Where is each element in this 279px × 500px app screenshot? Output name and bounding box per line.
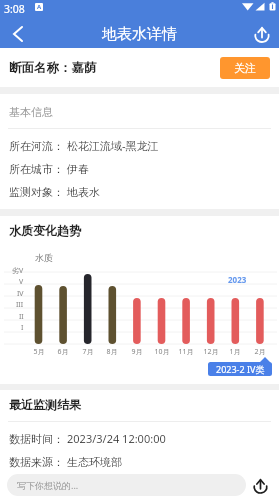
staticText: A [37,3,42,11]
staticText: 8月 [103,347,121,357]
staticText: 最近监测结果 [9,397,81,412]
staticText: 伊春 [67,162,89,176]
button[interactable]: Share [248,20,276,48]
staticText: 水质变化趋势 [9,223,81,238]
staticText: 所在城市： [9,162,64,176]
button[interactable]: Share [251,476,269,494]
staticText: 2023 [228,274,247,285]
staticText: 监测对象： [9,185,64,199]
staticText: 生态环境部 [67,455,122,469]
staticText: 6月 [54,347,72,357]
staticText: 断面名称：嘉荫 [9,60,97,76]
staticText: 地表水详情 [102,25,177,44]
staticText: 5月 [30,347,48,357]
button[interactable]: 写下你想说的... [7,474,246,496]
staticText: IV [17,289,24,299]
staticText: 所在河流： [9,139,64,153]
staticText: 1月 [226,347,244,357]
staticText: V [19,277,24,287]
staticText: 2023-2 IV类 [216,363,265,375]
staticText: I [21,323,24,333]
staticText: 9月 [128,347,146,357]
staticText: 关注 [234,61,256,75]
staticText: 2月 [251,347,269,357]
staticText: 劣V [12,266,24,276]
staticText: 11月 [177,347,195,357]
staticText: 12月 [202,347,220,357]
staticText: 地表水 [67,185,100,199]
staticText: 10月 [153,347,171,357]
button[interactable]: 关注 [220,57,270,79]
staticText: 2023/3/24 12:00:00 [67,431,166,446]
staticText: 松花江流域-黑龙江 [67,138,159,153]
staticText: III [16,300,24,310]
staticText: 数据来源： [9,455,64,469]
staticText: 水质 [35,252,53,263]
staticText: 3:08 [4,2,25,16]
staticText: 写下你想说的... [17,479,79,491]
staticText: II [19,312,24,322]
staticText: 数据时间： [9,432,64,446]
button[interactable]: Back [4,20,32,48]
staticText: 7月 [79,347,97,357]
staticText: 基本信息 [9,105,53,119]
